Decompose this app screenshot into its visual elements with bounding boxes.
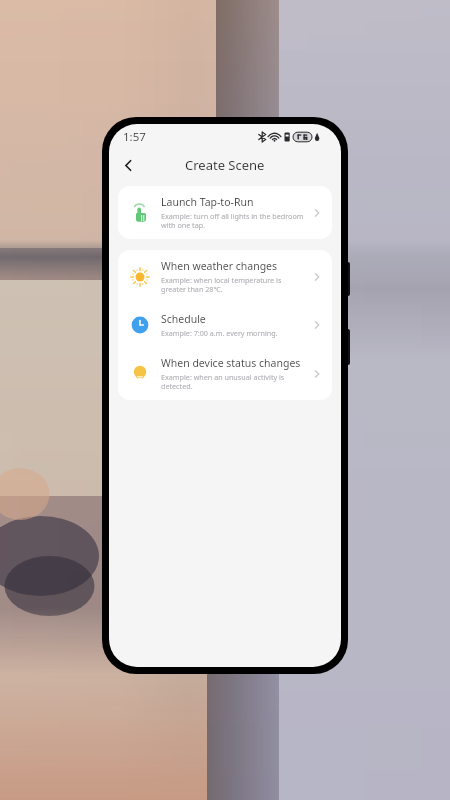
staticText: Example: turn off all lights in the bedr… (161, 211, 306, 230)
staticText: Example: 7:00 a.m. every morning. (161, 328, 278, 338)
staticText: 1:57 (123, 129, 146, 145)
staticText: When device status changes (161, 356, 301, 370)
button[interactable]: When device status changes (118, 347, 332, 400)
staticText: When weather changes (161, 259, 278, 273)
staticText: Launch Tap-to-Run (161, 195, 254, 209)
staticText: Schedule (161, 312, 206, 326)
button[interactable]: Schedule (118, 303, 332, 347)
button[interactable]: Launch Tap-to-Run (118, 186, 332, 239)
staticText: Example: when an unusual activity is det… (161, 372, 306, 391)
button[interactable]: Back (113, 150, 143, 180)
staticText: Create Scene (185, 156, 265, 174)
button[interactable]: When weather changes (118, 250, 332, 303)
staticText: Example: when local temperature is great… (161, 275, 306, 294)
